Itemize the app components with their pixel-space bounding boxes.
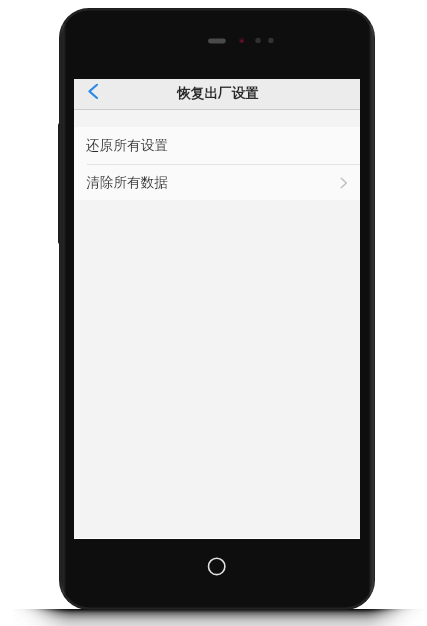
button[interactable]: 清除所有数据 [74, 165, 360, 200]
staticText: 恢复出厂设置 [177, 85, 259, 102]
button[interactable]: 还原所有设置 [74, 127, 360, 164]
staticText: 清除所有数据 [86, 174, 169, 191]
button[interactable]: Back [78, 79, 110, 110]
staticText: 还原所有设置 [86, 137, 169, 154]
